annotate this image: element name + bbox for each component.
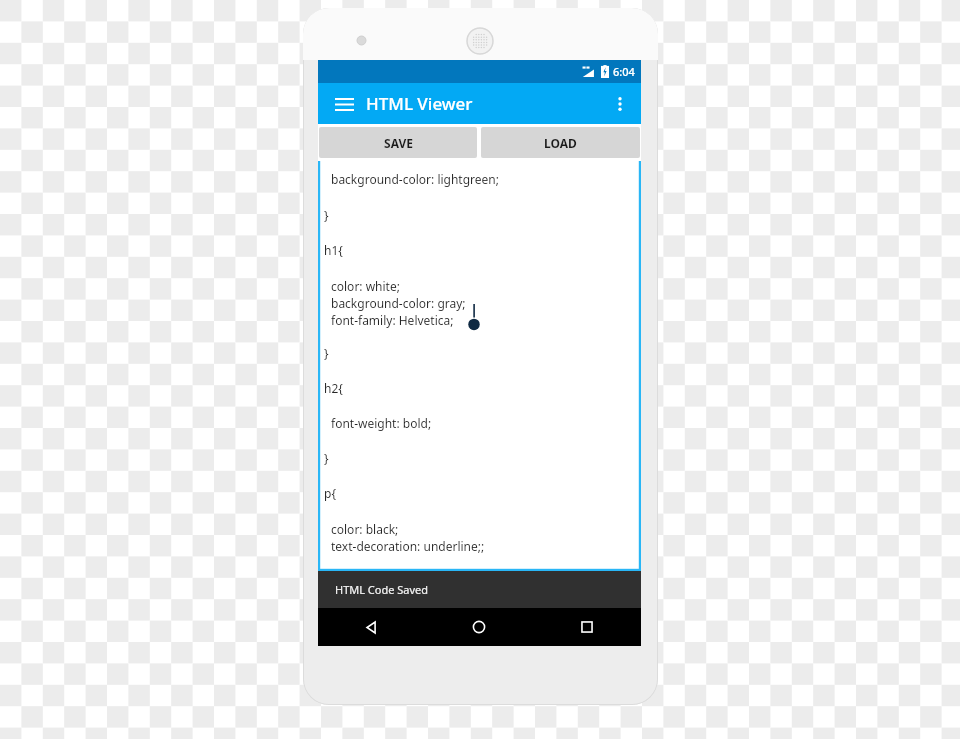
staticText: font-family: Helvetica;: [331, 312, 454, 328]
staticText: }: [324, 207, 329, 223]
button[interactable]: Open navigation menu: [330, 90, 358, 118]
button[interactable]: Back: [318, 608, 425, 646]
staticText: HTML Viewer: [366, 92, 473, 115]
staticText: text-decoration: underline;;: [331, 538, 485, 554]
staticText: LOAD: [544, 135, 577, 151]
staticText: 6:04: [613, 64, 635, 79]
button[interactable]: LOAD: [481, 127, 640, 158]
staticText: SAVE: [384, 135, 413, 151]
button[interactable]: Home: [425, 608, 533, 646]
staticText: }: [324, 450, 329, 466]
staticText: color: black;: [331, 521, 399, 537]
staticText: background-color: gray;: [331, 295, 466, 311]
button[interactable]: Recent apps: [533, 608, 641, 646]
staticText: HTML Code Saved: [335, 582, 429, 597]
staticText: color: white;: [331, 278, 400, 294]
staticText: h2{: [324, 380, 343, 396]
staticText: p{: [324, 485, 336, 501]
button[interactable]: More options: [605, 89, 635, 119]
staticText: }: [324, 345, 329, 361]
button[interactable]: SAVE: [319, 127, 477, 158]
staticText: background-color: lightgreen;: [331, 171, 499, 187]
staticText: font-weight: bold;: [331, 415, 432, 431]
staticText: h1{: [324, 242, 343, 258]
